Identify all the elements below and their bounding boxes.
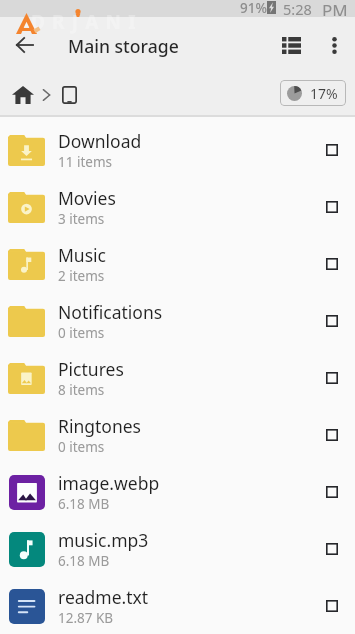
button[interactable]: readme.txt [0,577,355,634]
staticText: Download [58,129,142,153]
staticText: Notifications [58,300,163,324]
staticText: 12.87 KB [58,609,114,627]
staticText: 3 items [58,210,105,228]
button[interactable]: image.webp [0,463,355,520]
button[interactable]: Select Download [312,130,352,170]
button[interactable]: Select Movies [312,187,352,227]
button[interactable]: Select music.mp3 [312,529,352,569]
staticText: Ringtones [58,414,141,438]
staticText: image.webp [58,471,160,495]
button[interactable]: 17% [280,80,346,106]
staticText: PM [322,0,348,16]
button[interactable]: Select Notifications [312,301,352,341]
staticText: 0 items [58,438,105,456]
staticText: 5:28 [283,0,312,16]
staticText: 17% [310,84,338,103]
staticText: 6.18 MB [58,495,110,513]
button[interactable]: Home [6,78,40,112]
button[interactable]: More options [312,23,355,67]
button[interactable]: Pictures [0,349,355,406]
button[interactable]: Music [0,235,355,292]
staticText: 6.18 MB [58,552,110,570]
button[interactable]: Back [1,21,48,68]
staticText: 0 items [58,324,105,342]
button[interactable]: Select readme.txt [312,586,352,626]
button[interactable]: View list [269,23,313,67]
staticText: readme.txt [58,585,149,609]
staticText: Main storage [68,34,179,58]
staticText: 2 items [58,267,105,285]
button[interactable]: Device storage [54,79,85,110]
staticText: 11 items [58,153,113,171]
button[interactable]: Select Music [312,244,352,284]
button[interactable]: Select image.webp [312,472,352,512]
staticText: Music [58,243,106,267]
button[interactable]: Download [0,121,355,178]
button[interactable]: music.mp3 [0,520,355,577]
button[interactable]: Ringtones [0,406,355,463]
staticText: Pictures [58,357,124,381]
button[interactable]: Select Pictures [312,358,352,398]
staticText: Movies [58,186,116,210]
staticText: 91% [240,0,267,16]
staticText: 8 items [58,381,105,399]
staticText: music.mp3 [58,528,149,552]
staticText: DRJANI [31,9,143,35]
button[interactable]: Notifications [0,292,355,349]
button[interactable]: Movies [0,178,355,235]
button[interactable]: Select Ringtones [312,415,352,455]
